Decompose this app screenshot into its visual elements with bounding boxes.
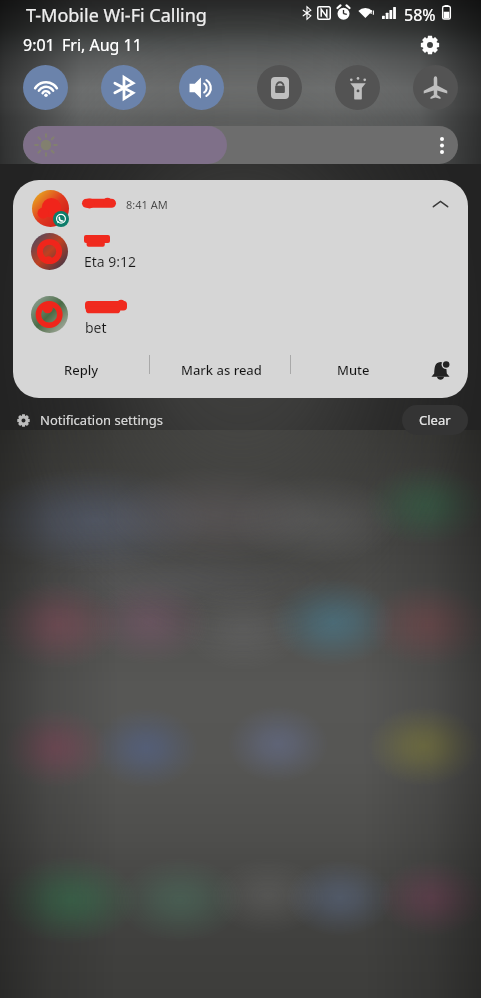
staticText: Eta 9:12 <box>84 252 137 271</box>
button[interactable]: Sound <box>179 65 224 110</box>
button[interactable]: Reply <box>13 348 149 392</box>
button[interactable]: Collapse notification <box>422 186 458 222</box>
button[interactable]: Settings <box>414 29 446 61</box>
button[interactable]: Airplane mode <box>413 65 458 110</box>
button[interactable]: Notification controls <box>420 350 460 390</box>
button[interactable]: Bluetooth <box>101 65 146 110</box>
staticText: T-Mobile Wi-Fi Calling <box>26 3 207 28</box>
staticText: Reply <box>64 361 99 379</box>
button[interactable]: Brightness <box>23 126 458 164</box>
button[interactable]: Clear <box>402 405 468 435</box>
button[interactable]: Flashlight <box>335 65 380 110</box>
button[interactable] <box>13 228 468 284</box>
staticText: Mute <box>337 361 370 379</box>
button[interactable]: Notification settings <box>16 411 164 429</box>
staticText: Mark as read <box>181 361 262 379</box>
staticText: 8:41 AM <box>126 197 168 212</box>
button[interactable] <box>13 290 468 346</box>
staticText: bet <box>85 318 107 337</box>
staticText: Fri, Aug 11 <box>62 34 142 56</box>
staticText: 9:01 <box>23 34 55 56</box>
button[interactable]: Screen lock <box>257 65 302 110</box>
button[interactable] <box>13 184 468 226</box>
button[interactable]: Wi-Fi <box>23 65 68 110</box>
button[interactable]: Mark as read <box>153 348 289 392</box>
staticText: Notification settings <box>40 411 164 429</box>
staticText: Clear <box>419 411 451 429</box>
staticText: 58% <box>404 4 436 26</box>
button[interactable]: Mute <box>293 348 413 392</box>
